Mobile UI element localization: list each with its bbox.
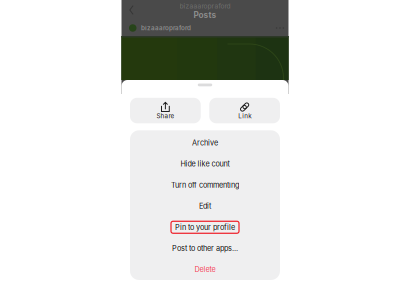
staticText: Hide like count xyxy=(180,159,229,168)
button[interactable]: Pin to your profile xyxy=(130,217,280,238)
staticText: Share xyxy=(156,112,174,120)
staticText: Archive xyxy=(192,138,218,147)
staticText: Pin to your profile xyxy=(175,223,235,232)
button[interactable]: Post to other apps... xyxy=(130,238,280,259)
staticText: Delete xyxy=(194,265,215,274)
staticText: bizaaaropraford xyxy=(179,2,230,10)
staticText: Turn off commenting xyxy=(171,181,239,189)
staticText: bizaaaropraford xyxy=(141,24,191,32)
button[interactable]: Turn off commenting xyxy=(130,174,280,196)
button[interactable]: Edit xyxy=(130,196,280,217)
staticText: Posts xyxy=(193,10,216,20)
button[interactable]: Share xyxy=(130,98,201,123)
button[interactable]: Hide like count xyxy=(130,153,280,174)
staticText: Post to other apps... xyxy=(172,244,238,253)
staticText: Link xyxy=(238,112,251,120)
button[interactable]: Link xyxy=(209,98,280,123)
button[interactable]: Delete xyxy=(130,259,280,280)
button[interactable]: Archive xyxy=(130,132,280,153)
staticText: Edit xyxy=(199,202,211,211)
